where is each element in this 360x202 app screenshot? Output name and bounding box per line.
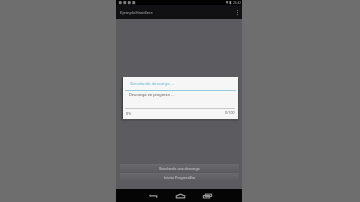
button[interactable]: Home <box>171 191 189 201</box>
staticText: 24:42 <box>233 1 242 5</box>
staticText: 0% <box>126 111 132 116</box>
staticText: Descarga en progreso ... <box>129 92 175 97</box>
staticText: Iniciar ProgressBar <box>164 176 196 180</box>
button[interactable]: Simulando una descarga <box>120 164 239 173</box>
button[interactable]: More options <box>233 5 242 19</box>
button[interactable]: Recent apps <box>198 191 216 201</box>
staticText: EjemploHandlers <box>120 10 153 15</box>
button[interactable]: Iniciar ProgressBar <box>120 173 239 182</box>
button[interactable]: Back <box>144 191 162 201</box>
staticText: Simulando una descarga <box>159 167 200 171</box>
staticText: 0/100 <box>225 111 235 115</box>
staticText: Simulando descarga ... <box>130 81 175 86</box>
